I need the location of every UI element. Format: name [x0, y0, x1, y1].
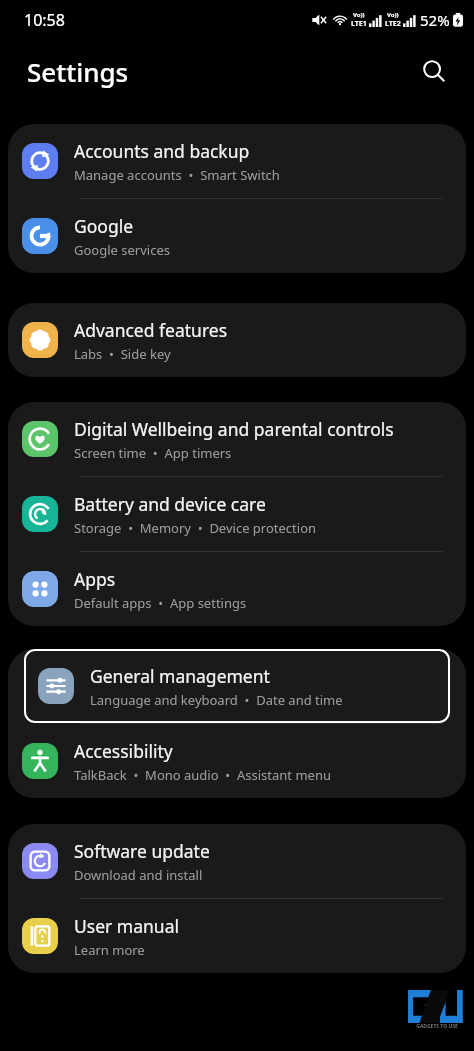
staticText: Language and keyboard • Date and time — [90, 691, 343, 709]
button[interactable]: Accounts and backup — [8, 124, 466, 198]
staticText: Vo)) — [387, 11, 399, 19]
staticText: Google — [74, 214, 134, 238]
staticText: Accessibility — [74, 739, 173, 763]
staticText: Google services — [74, 241, 170, 259]
staticText: General management — [90, 664, 270, 688]
staticText: Digital Wellbeing and parental controls — [74, 417, 394, 441]
button[interactable]: Google — [8, 199, 466, 273]
staticText: 10:58 — [24, 9, 65, 31]
staticText: Labs • Side key — [74, 345, 171, 363]
staticText: Learn more — [74, 941, 145, 959]
button[interactable]: Digital Wellbeing and parental controls — [8, 402, 466, 476]
button[interactable]: Accessibility — [8, 724, 466, 798]
staticText: Advanced features — [74, 318, 228, 342]
staticText: Apps — [74, 567, 116, 591]
button[interactable]: Apps — [8, 552, 466, 626]
button[interactable]: Advanced features — [8, 303, 466, 377]
staticText: Vo)) — [353, 11, 365, 19]
staticText: User manual — [74, 914, 179, 938]
staticText: Download and install — [74, 866, 203, 884]
staticText: GADGETS TO USE — [416, 1023, 458, 1030]
staticText: Default apps • App settings — [74, 594, 247, 612]
button[interactable]: General management — [24, 649, 450, 723]
staticText: Storage • Memory • Device protection — [74, 519, 317, 537]
staticText: LTE1 — [351, 19, 367, 29]
staticText: Software update — [74, 839, 210, 863]
staticText: TalkBack • Mono audio • Assistant menu — [74, 766, 331, 784]
button[interactable]: Software update — [8, 824, 466, 898]
staticText: Settings — [27, 54, 129, 89]
staticText: Battery and device care — [74, 492, 266, 516]
staticText: Manage accounts • Smart Switch — [74, 166, 280, 184]
staticText: Accounts and backup — [74, 139, 250, 163]
button[interactable]: Battery and device care — [8, 477, 466, 551]
staticText: 52% — [420, 10, 450, 30]
staticText: Screen time • App timers — [74, 444, 232, 462]
staticText: LTE2 — [385, 19, 401, 29]
button[interactable]: User manual — [8, 899, 466, 973]
button[interactable]: Search settings — [414, 51, 454, 91]
